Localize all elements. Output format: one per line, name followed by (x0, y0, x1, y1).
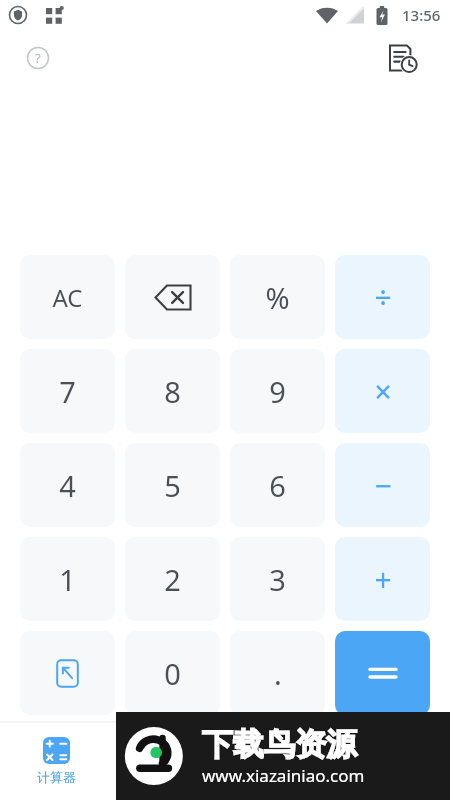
button[interactable]: + (335, 537, 430, 621)
button[interactable]: Expand (20, 631, 115, 715)
staticText: 3 (269, 560, 286, 599)
button[interactable]: 8 (125, 349, 220, 433)
button[interactable]: × (335, 349, 430, 433)
button[interactable]: % (230, 255, 325, 339)
staticText: 13:56 (402, 5, 441, 25)
staticText: 下载鸟资源 (202, 725, 357, 764)
button[interactable]: 9 (230, 349, 325, 433)
staticText: + (374, 559, 392, 600)
staticText: × (374, 371, 392, 412)
staticText: 2 (164, 560, 181, 599)
button[interactable]: 4 (20, 443, 115, 527)
button[interactable]: 2 (125, 537, 220, 621)
staticText: 4 (59, 466, 76, 505)
button[interactable]: 7 (20, 349, 115, 433)
staticText: www.xiazainiao.com (202, 764, 365, 787)
button[interactable]: 计算器 (16, 722, 96, 800)
staticText: 1 (59, 560, 76, 599)
staticText: − (374, 465, 392, 506)
button[interactable]: − (335, 443, 430, 527)
button[interactable]: Backspace (125, 255, 220, 339)
staticText: 计算器 (37, 769, 76, 785)
staticText: 6 (269, 466, 286, 505)
button[interactable]: 3 (230, 537, 325, 621)
staticText: . (274, 654, 282, 693)
button[interactable]: History (380, 36, 424, 80)
button[interactable]: 0 (125, 631, 220, 715)
button[interactable]: 1 (20, 537, 115, 621)
staticText: 9 (269, 372, 286, 411)
staticText: 0 (164, 654, 181, 693)
staticText: 8 (164, 372, 181, 411)
button[interactable]: Equals (335, 631, 430, 715)
button[interactable]: ÷ (335, 255, 430, 339)
staticText: 7 (59, 372, 76, 411)
staticText: 5 (164, 466, 181, 505)
staticText: % (265, 278, 290, 317)
staticText: ÷ (374, 277, 392, 318)
button[interactable]: 5 (125, 443, 220, 527)
button[interactable]: AC (20, 255, 115, 339)
button[interactable]: . (230, 631, 325, 715)
staticText: ? (35, 49, 41, 67)
staticText: AC (52, 281, 83, 314)
button[interactable]: Help (16, 36, 60, 80)
button[interactable]: 6 (230, 443, 325, 527)
